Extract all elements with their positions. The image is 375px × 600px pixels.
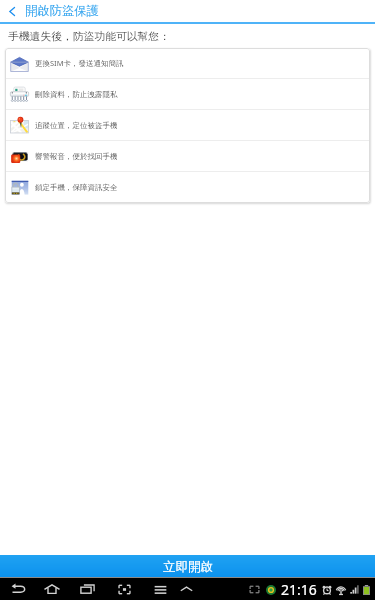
button[interactable]: 鎖定手機，保障資訊安全 [5,172,370,203]
button[interactable]: 立即開啟 [0,555,375,577]
staticText: 鎖定手機，保障資訊安全 [35,183,118,192]
button[interactable]: Menu [149,578,171,600]
button[interactable]: 更換SIM卡，發送通知簡訊 [5,48,370,78]
button[interactable]: Back [7,578,29,600]
staticText: 刪除資料，防止洩露隱私 [35,90,118,99]
button[interactable]: Recent apps [76,578,98,600]
button[interactable]: Screenshot [113,578,135,600]
staticText: 更換SIM卡，發送通知簡訊 [35,58,124,68]
staticText: 手機遺失後，防盜功能可以幫您： [8,30,170,44]
button[interactable]: 刪除資料，防止洩露隱私 [5,79,370,109]
button[interactable]: 追蹤位置，定位被盜手機 [5,110,370,140]
button[interactable]: 開啟防盜保護 [0,0,375,22]
button[interactable]: Home [41,578,63,600]
staticText: 追蹤位置，定位被盜手機 [35,121,118,130]
staticText: 立即開啟 [163,559,213,575]
staticText: 21:16 [281,580,317,599]
button[interactable]: Expand status bar [175,578,197,600]
staticText: 響警報音，便於找回手機 [35,152,118,161]
staticText: 開啟防盜保護 [25,3,99,18]
button[interactable]: 響警報音，便於找回手機 [5,141,370,171]
